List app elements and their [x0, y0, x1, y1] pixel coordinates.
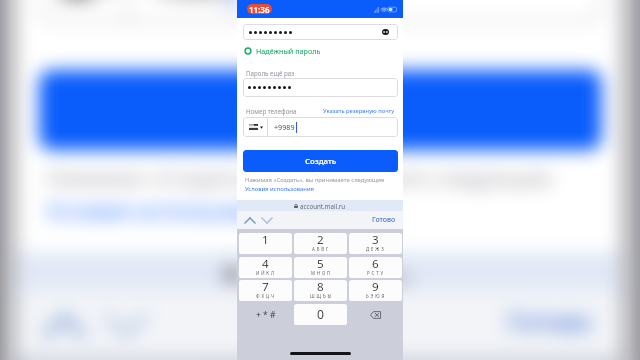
button[interactable]: 6 — [349, 257, 402, 278]
staticText: А Б В Г — [312, 246, 329, 252]
staticText: И Й К Л — [256, 270, 275, 276]
staticText: Номер телефона — [246, 107, 297, 115]
staticText: 1 — [262, 233, 269, 248]
staticText: account.mail.ru — [246, 259, 413, 288]
staticText: Ф Х Ц Ч — [256, 293, 275, 299]
staticText: 6 — [372, 257, 379, 272]
button[interactable]: 2 — [294, 233, 347, 254]
staticText: 11:36 — [249, 4, 270, 14]
other: Show password — [382, 29, 389, 35]
staticText: 0 — [317, 306, 324, 323]
staticText: Ь Э Ю Я — [366, 293, 385, 299]
button[interactable]: Select country — [249, 124, 263, 130]
staticText: 7 — [262, 280, 269, 295]
button[interactable]: Select country — [39, 0, 602, 23]
staticText: Пароль ещё раз — [246, 69, 295, 77]
button[interactable]: Готово — [507, 306, 594, 342]
staticText: Нажимая «Создать», вы принимаете следующ… — [245, 176, 385, 184]
button[interactable]: 8 — [294, 280, 347, 301]
button[interactable]: 9 — [349, 280, 402, 301]
button[interactable]: 3 — [349, 233, 402, 254]
button[interactable]: Next field — [261, 217, 273, 224]
staticText: 5 — [317, 257, 324, 272]
button[interactable]: Delete — [349, 304, 402, 325]
staticText: М Н О П — [311, 270, 331, 276]
staticText: account.mail.ru — [300, 202, 346, 210]
staticText: 3 — [372, 233, 379, 248]
button[interactable]: Условия использования — [46, 197, 297, 226]
button[interactable]: Previous field — [244, 217, 256, 224]
button[interactable]: Select country — [243, 117, 398, 137]
button[interactable]: Указать резервную почту — [323, 107, 395, 115]
button[interactable]: 5 — [294, 257, 347, 278]
staticText: 4 — [262, 257, 269, 272]
staticText: 2 — [317, 233, 324, 248]
button[interactable]: 0 — [294, 304, 347, 325]
staticText: Нажимая «Создать», вы принимаете следующ… — [46, 164, 554, 193]
button[interactable]: + * # — [239, 304, 292, 325]
button[interactable]: Готово — [372, 215, 396, 225]
button[interactable]: Show password — [243, 24, 398, 40]
staticText: Создать — [264, 92, 380, 132]
staticText: +9989 — [151, 0, 228, 5]
button[interactable]: 7 — [239, 280, 292, 301]
button[interactable]: Создать — [243, 150, 398, 172]
button[interactable] — [243, 78, 398, 97]
staticText: Д Е Ж З — [366, 246, 385, 252]
button[interactable]: 4 — [239, 257, 292, 278]
staticText: 8 — [317, 280, 324, 295]
staticText: Создать — [305, 156, 337, 167]
button[interactable]: Next field — [104, 313, 148, 339]
staticText: +9989 — [274, 122, 295, 132]
staticText: Ш Щ Ъ Ы — [310, 293, 332, 299]
button[interactable]: Previous field — [43, 313, 86, 339]
staticText: 9 — [372, 280, 379, 295]
button[interactable]: 1 — [239, 233, 292, 254]
button[interactable]: Условия использования — [245, 185, 314, 193]
button[interactable]: Создать — [39, 70, 602, 150]
staticText: + * # — [256, 309, 276, 321]
staticText: Р С Т У — [367, 270, 384, 276]
staticText: Надёжный пароль — [256, 46, 321, 56]
